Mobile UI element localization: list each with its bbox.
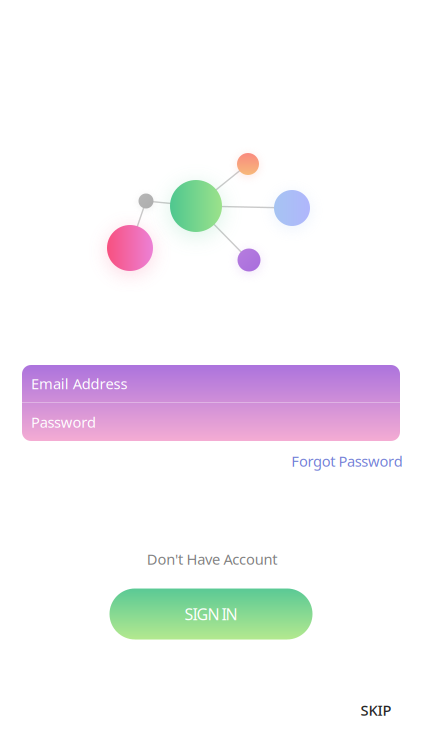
staticText: SIGN IN xyxy=(184,603,237,625)
staticText: Don't Have Account xyxy=(147,549,277,569)
button[interactable]: SIGN IN xyxy=(109,588,312,639)
staticText: Forgot Password xyxy=(291,451,403,471)
button[interactable]: SKIP xyxy=(360,700,391,720)
button[interactable]: Forgot Password xyxy=(291,451,403,471)
staticText: Email Address xyxy=(31,374,127,393)
staticText: SKIP xyxy=(360,700,391,720)
staticText: Password xyxy=(31,412,96,432)
